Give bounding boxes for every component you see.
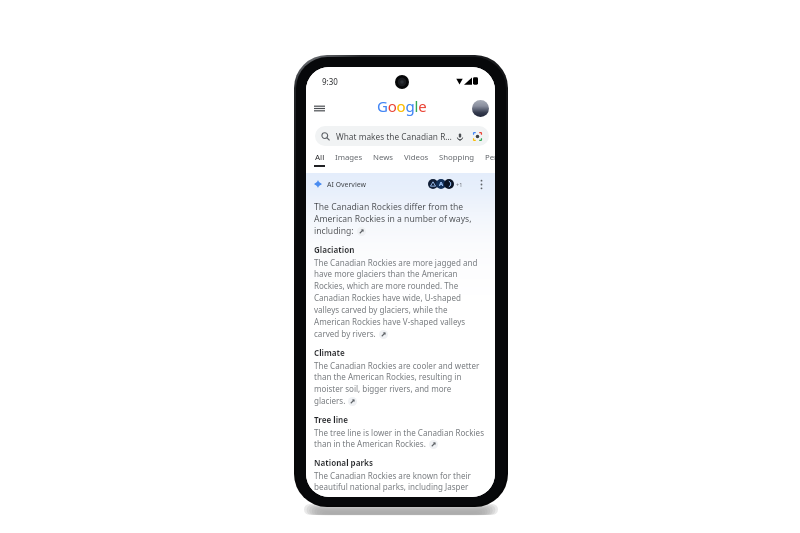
staticText: Images — [335, 152, 363, 163]
button[interactable]: Source link — [357, 227, 366, 236]
staticText: A — [439, 180, 444, 188]
staticText: Climate — [314, 347, 345, 358]
button[interactable]: Account — [472, 100, 489, 117]
button[interactable]: Shopping — [439, 152, 475, 173]
staticText: 9:30 — [322, 76, 338, 87]
staticText: Per — [485, 152, 495, 163]
button[interactable]: Per — [485, 152, 495, 173]
button[interactable]: Source link — [379, 330, 388, 339]
staticText: Shopping — [439, 152, 475, 163]
staticText: What makes the Canadian R… — [336, 131, 452, 142]
staticText: Google — [377, 96, 427, 116]
button[interactable]: Menu — [312, 101, 327, 116]
button[interactable]: Source link — [429, 440, 438, 449]
button[interactable]: Sources — [428, 179, 454, 189]
button[interactable]: Google Lens — [471, 130, 483, 142]
staticText: AI Overview — [327, 180, 366, 189]
button[interactable]: Voice search — [454, 131, 465, 142]
staticText: Tree line — [314, 414, 349, 425]
staticText: National parks — [314, 457, 374, 468]
staticText: The Canadian Rockies are more jagged and… — [314, 257, 484, 340]
staticText: Glaciation — [314, 244, 355, 255]
button[interactable]: All — [314, 152, 325, 173]
button[interactable]: Videos — [404, 152, 429, 173]
staticText: The Canadian Rockies are known for their… — [314, 470, 484, 493]
staticText: Videos — [404, 152, 429, 163]
button[interactable]: What makes the Canadian R… — [315, 126, 489, 146]
button[interactable]: Source link — [348, 397, 357, 406]
button[interactable]: More options — [475, 178, 487, 190]
staticText: News — [373, 152, 394, 163]
staticText: The tree line is lower in the Canadian R… — [314, 427, 484, 450]
staticText: +1 — [456, 181, 463, 188]
staticText: All — [315, 152, 325, 163]
button[interactable]: News — [373, 152, 394, 173]
staticText: The Canadian Rockies are cooler and wett… — [314, 360, 484, 407]
button[interactable]: Images — [335, 152, 363, 173]
staticText: The Canadian Rockies differ from the Ame… — [314, 201, 484, 237]
